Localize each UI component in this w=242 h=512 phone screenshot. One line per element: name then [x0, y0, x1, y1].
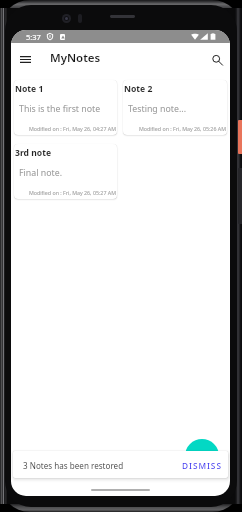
staticText: DISMISS: [182, 460, 222, 471]
staticText: MyNotes: [50, 50, 101, 66]
staticText: Modified on : Fri, May 26, 04:27 AM: [14, 125, 116, 132]
button[interactable]: Note 2: [123, 80, 227, 135]
button[interactable]: DISMISS: [182, 460, 222, 471]
staticText: Final note.: [19, 167, 63, 179]
button[interactable]: Add note: [185, 439, 219, 473]
staticText: Note 1: [15, 83, 44, 95]
staticText: 5:37: [26, 32, 41, 42]
button[interactable]: Search: [205, 49, 227, 71]
staticText: Modified on : Fri, May 26, 05:27 AM: [14, 189, 116, 196]
staticText: Testing note...: [128, 103, 186, 115]
staticText: Modified on : Fri, May 26, 05:26 AM: [123, 125, 226, 132]
staticText: Note 2: [124, 83, 153, 95]
staticText: 3 Notes has been restored: [23, 460, 124, 471]
button[interactable]: Note 1: [14, 80, 117, 135]
button[interactable]: 3rd note: [14, 144, 117, 199]
staticText: This is the first note: [19, 103, 101, 115]
button[interactable]: Open navigation menu: [17, 51, 34, 68]
staticText: 3rd note: [15, 147, 52, 159]
